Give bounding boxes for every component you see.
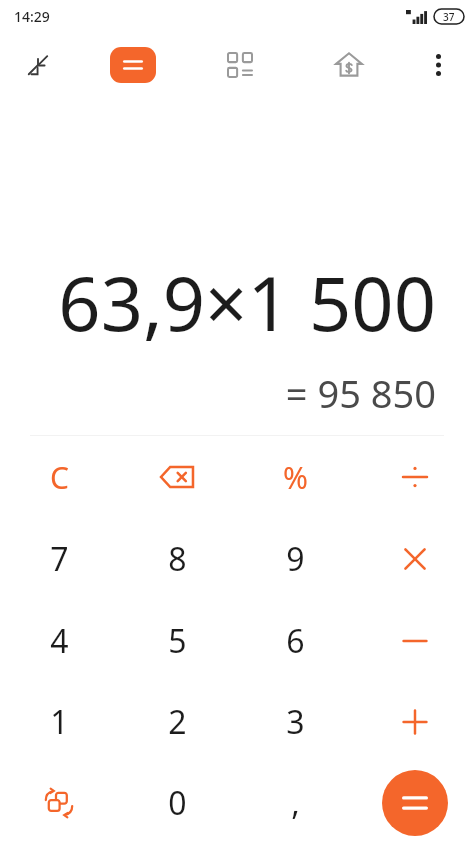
staticText: % bbox=[283, 457, 308, 498]
staticText: 2 bbox=[168, 700, 187, 744]
button[interactable]: % bbox=[236, 436, 355, 518]
button[interactable]: Convert bbox=[0, 762, 118, 843]
button[interactable]: Minus bbox=[355, 600, 474, 681]
button[interactable]: 2 bbox=[118, 681, 236, 762]
staticText: 8 bbox=[168, 537, 187, 581]
button[interactable]: 7 bbox=[0, 518, 118, 600]
staticText: 37 bbox=[443, 10, 455, 24]
button[interactable]: Divide bbox=[355, 436, 474, 518]
button[interactable]: Calculator bbox=[110, 47, 156, 83]
button[interactable]: Multiply bbox=[355, 518, 474, 600]
staticText: = 95 850 bbox=[0, 367, 436, 419]
staticText: 5 bbox=[168, 619, 187, 663]
staticText: 63,9×1 500 bbox=[0, 252, 436, 353]
button[interactable]: 6 bbox=[236, 600, 355, 681]
button[interactable]: Equals bbox=[382, 770, 448, 836]
staticText: 6 bbox=[286, 619, 305, 663]
button[interactable]: C bbox=[0, 436, 118, 518]
staticText: C bbox=[50, 457, 69, 498]
button[interactable]: 4 bbox=[0, 600, 118, 681]
button[interactable]: 3 bbox=[236, 681, 355, 762]
button[interactable]: Collapse bbox=[14, 41, 62, 89]
button[interactable]: Converters bbox=[216, 41, 264, 89]
staticText: , bbox=[291, 781, 300, 825]
button[interactable]: Loan calculator bbox=[325, 41, 373, 89]
button[interactable]: Plus bbox=[355, 681, 474, 762]
button[interactable]: 0 bbox=[118, 762, 236, 843]
button[interactable]: 8 bbox=[118, 518, 236, 600]
staticText: 4 bbox=[50, 619, 69, 663]
staticText: 1 bbox=[50, 700, 69, 744]
staticText: 14:29 bbox=[14, 7, 50, 26]
button[interactable]: 1 bbox=[0, 681, 118, 762]
staticText: 7 bbox=[50, 537, 69, 581]
button[interactable]: , bbox=[236, 762, 355, 843]
button[interactable]: Backspace bbox=[118, 436, 236, 518]
staticText: 9 bbox=[286, 537, 305, 581]
staticText: 0 bbox=[168, 781, 187, 825]
staticText: 3 bbox=[286, 700, 305, 744]
button[interactable]: 5 bbox=[118, 600, 236, 681]
button[interactable]: More options bbox=[414, 41, 462, 89]
button[interactable]: 9 bbox=[236, 518, 355, 600]
